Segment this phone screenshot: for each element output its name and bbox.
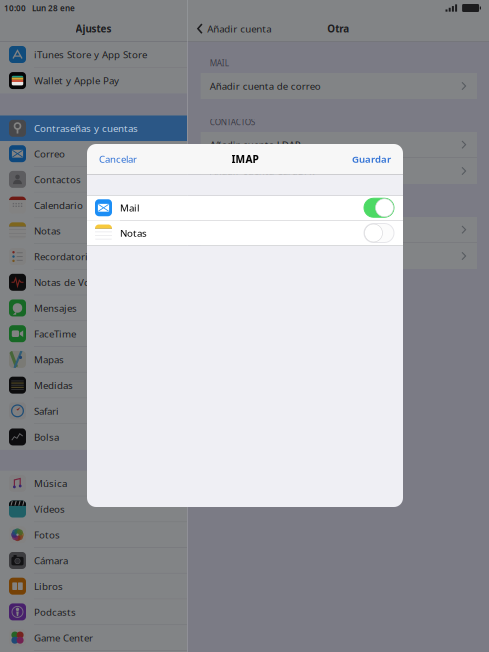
button[interactable]: Correo [0, 141, 187, 167]
staticText: Añadir cuenta LDAP [210, 138, 301, 151]
button[interactable]: Notas [87, 220, 403, 245]
button[interactable]: Notas de Voz [0, 270, 187, 295]
staticText: iTunes Store y App Store [34, 48, 147, 61]
staticText: Libros [34, 580, 63, 593]
button[interactable]: Wallet y Apple Pay [0, 68, 187, 93]
button[interactable]: FaceTime [0, 321, 187, 347]
button[interactable]: Safari [0, 398, 187, 424]
staticText: Wallet y Apple Pay [34, 74, 119, 87]
staticText: FaceTime [34, 327, 76, 340]
button[interactable]: Música [0, 471, 187, 496]
staticText: CONTACTOS [210, 116, 256, 128]
button[interactable]: Podcasts [0, 599, 187, 625]
button[interactable]: Medidas [0, 373, 187, 398]
button[interactable]: Añadir calendario suscrito [201, 243, 477, 269]
button[interactable]: Notas [0, 218, 187, 244]
staticText: Cancelar [99, 152, 137, 166]
button[interactable]: Vídeos [0, 496, 187, 522]
staticText: Añadir cuenta [207, 22, 271, 35]
button[interactable]: Mensajes [0, 295, 187, 321]
button[interactable]: Cámara [0, 548, 187, 574]
staticText: Podcasts [34, 605, 76, 619]
button[interactable]: Cancelar [87, 144, 147, 174]
button[interactable]: Recordatorios [0, 244, 187, 270]
button[interactable]: Añadir cuenta de correo [201, 73, 477, 99]
button[interactable]: Guardar [342, 144, 403, 174]
staticText: Mapas [34, 353, 64, 366]
staticText: Correo [34, 147, 65, 160]
staticText: Calendario [34, 198, 83, 212]
button[interactable]: Fotos [0, 522, 187, 548]
staticText: Notas de Voz [34, 276, 95, 289]
staticText: Notas [34, 224, 61, 237]
staticText: Música [34, 477, 67, 490]
staticText: 10:00 [4, 2, 26, 14]
button[interactable]: Game Center [0, 625, 187, 651]
staticText: Bolsa [34, 430, 59, 444]
button[interactable]: Libros [0, 574, 187, 599]
staticText: MAIL [210, 57, 229, 69]
button[interactable]: Añadir cuenta CardDAV [201, 158, 477, 184]
button[interactable]: Añadir cuenta CalDAV [201, 217, 477, 243]
staticText: IMAP [231, 152, 258, 166]
staticText: Vídeos [34, 502, 65, 516]
staticText: Guardar [352, 152, 391, 166]
staticText: Recordatorios [34, 250, 99, 263]
button[interactable]: Contactos [0, 167, 187, 193]
staticText: Cámara [34, 554, 68, 567]
staticText: Otra [327, 22, 349, 35]
button[interactable]: Mail [87, 195, 403, 220]
button[interactable]: Añadir cuenta LDAP [201, 132, 477, 158]
staticText: Lun 28 ene [32, 2, 75, 14]
button[interactable]: Calendario [0, 193, 187, 218]
button[interactable]: Añadir cuenta [188, 16, 271, 41]
staticText: Contraseñas y cuentas [34, 122, 138, 135]
staticText: Notas [120, 226, 147, 240]
staticText: Mail [120, 201, 140, 214]
staticText: Añadir cuenta CardDAV [210, 164, 317, 178]
button[interactable]: Contraseñas y cuentas [0, 115, 187, 141]
staticText: Contactos [34, 173, 81, 186]
button[interactable]: Mapas [0, 347, 187, 373]
staticText: Ajustes [75, 22, 111, 35]
button[interactable]: iTunes Store y App Store [0, 42, 187, 68]
staticText: Mensajes [34, 301, 77, 315]
staticText: Fotos [34, 528, 60, 541]
staticText: Safari [34, 404, 59, 417]
staticText: Game Center [34, 631, 93, 644]
button[interactable]: Bolsa [0, 424, 187, 450]
staticText: Medidas [34, 378, 73, 392]
staticText: Añadir cuenta de correo [210, 79, 321, 93]
